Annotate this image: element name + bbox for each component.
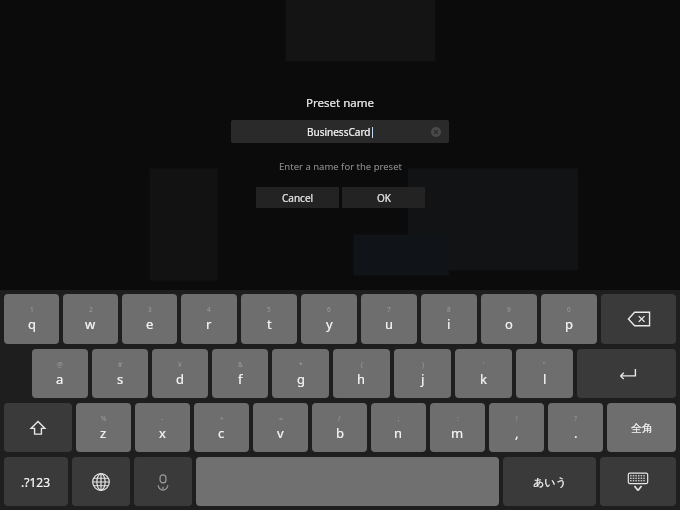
staticText: 0 <box>567 305 571 314</box>
staticText: ' <box>483 360 485 369</box>
staticText: 5 <box>267 305 271 314</box>
staticText: ¥ <box>178 360 182 369</box>
staticText: 1 <box>30 305 34 314</box>
staticText: d <box>176 370 184 388</box>
staticText: OK <box>377 191 391 205</box>
staticText: Enter a name for the preset <box>279 160 402 173</box>
staticText: z <box>100 424 107 442</box>
button[interactable]: Hide keyboard <box>600 457 676 506</box>
staticText: u <box>385 315 394 333</box>
staticText: 8 <box>447 305 451 314</box>
button[interactable]: * <box>272 349 329 398</box>
staticText: ) <box>422 360 424 369</box>
staticText: : <box>457 414 459 423</box>
staticText: Preset name <box>306 95 374 111</box>
button[interactable]: Change language <box>72 457 130 506</box>
staticText: q <box>28 315 36 333</box>
button[interactable]: 3 <box>122 294 177 344</box>
staticText: & <box>238 360 243 369</box>
button[interactable]: = <box>253 403 308 452</box>
staticText: a <box>56 370 64 388</box>
staticText: b <box>336 424 344 442</box>
staticText: o <box>505 315 513 333</box>
button[interactable]: # <box>92 349 148 398</box>
staticText: y <box>326 315 333 333</box>
button[interactable]: 7 <box>361 294 417 344</box>
staticText: 全角 <box>631 421 653 435</box>
staticText: , <box>515 424 519 442</box>
staticText: h <box>357 370 366 388</box>
button[interactable]: - <box>135 403 190 452</box>
button[interactable]: ! <box>489 403 544 452</box>
staticText: 7 <box>387 305 391 314</box>
button[interactable]: + <box>194 403 249 452</box>
button[interactable]: : <box>430 403 485 452</box>
button[interactable]: 9 <box>481 294 537 344</box>
staticText: 9 <box>507 305 511 314</box>
button[interactable]: / <box>312 403 367 452</box>
button[interactable]: 5 <box>241 294 297 344</box>
button[interactable]: 2 <box>63 294 118 344</box>
staticText: k <box>480 370 487 388</box>
staticText: BusinessCard <box>307 125 371 139</box>
button[interactable]: 4 <box>181 294 237 344</box>
staticText: f <box>238 370 243 388</box>
staticText: + <box>220 414 224 423</box>
staticText: .?123 <box>21 474 51 490</box>
staticText: 4 <box>207 305 211 314</box>
button[interactable]: BusinessCard <box>231 120 449 143</box>
button[interactable]: Shift <box>4 403 72 452</box>
staticText: x <box>159 424 166 442</box>
button[interactable]: Clear text <box>429 125 443 139</box>
button[interactable]: 全角 <box>607 403 676 452</box>
staticText: r <box>206 315 212 333</box>
button[interactable]: ' <box>455 349 512 398</box>
button[interactable]: OK <box>342 187 425 208</box>
button[interactable]: Voice input <box>134 457 192 506</box>
staticText: 3 <box>148 305 152 314</box>
button[interactable]: ¥ <box>152 349 208 398</box>
staticText: n <box>394 424 403 442</box>
button[interactable]: & <box>212 349 268 398</box>
button[interactable]: ; <box>371 403 426 452</box>
staticText: Cancel <box>282 191 314 205</box>
staticText: v <box>277 424 284 442</box>
staticText: / <box>338 414 341 423</box>
staticText: g <box>297 370 305 388</box>
staticText: i <box>447 315 451 333</box>
staticText: c <box>218 424 225 442</box>
staticText: ? <box>574 414 577 423</box>
staticText: . <box>574 424 578 442</box>
button[interactable]: 8 <box>421 294 477 344</box>
staticText: s <box>117 370 124 388</box>
button[interactable]: ) <box>394 349 451 398</box>
staticText: @ <box>57 360 63 369</box>
button[interactable]: Backspace <box>601 294 676 344</box>
staticText: ; <box>398 414 400 423</box>
staticText: l <box>543 370 547 388</box>
staticText: = <box>279 414 283 423</box>
staticText: # <box>118 360 123 369</box>
staticText: あいう <box>533 475 567 489</box>
staticText: % <box>101 414 107 423</box>
button[interactable]: % <box>76 403 131 452</box>
staticText: p <box>565 315 573 333</box>
button[interactable]: .?123 <box>4 457 68 506</box>
button[interactable]: Cancel <box>256 187 339 208</box>
button[interactable]: " <box>516 349 573 398</box>
button[interactable]: ( <box>333 349 390 398</box>
staticText: " <box>543 360 546 369</box>
button[interactable]: 0 <box>541 294 597 344</box>
button[interactable]: あいう <box>503 457 596 506</box>
button[interactable]: 6 <box>301 294 357 344</box>
staticText: t <box>267 315 272 333</box>
button[interactable]: Enter <box>577 349 676 398</box>
button[interactable]: 1 <box>4 294 59 344</box>
button[interactable]: @ <box>32 349 88 398</box>
staticText: ( <box>361 360 363 369</box>
staticText: * <box>299 360 303 369</box>
staticText: 6 <box>327 305 331 314</box>
staticText: 2 <box>89 305 93 314</box>
button[interactable]: ? <box>548 403 603 452</box>
